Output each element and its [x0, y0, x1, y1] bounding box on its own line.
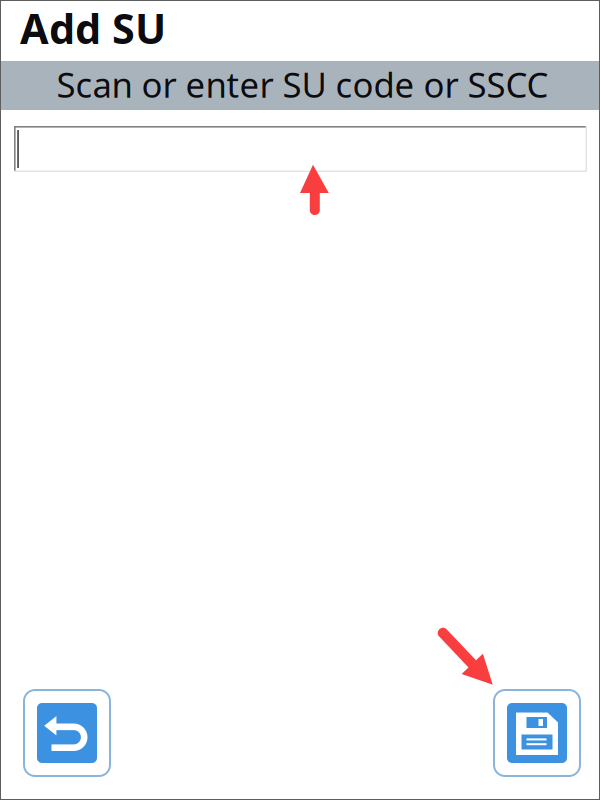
- staticText: Scan or enter SU code or SSCC: [56, 61, 548, 107]
- button[interactable]: Back: [24, 690, 110, 776]
- button[interactable]: Save: [494, 690, 580, 776]
- button[interactable]: SU code or SSCC: [14, 126, 587, 172]
- staticText: Add SU: [20, 1, 166, 55]
